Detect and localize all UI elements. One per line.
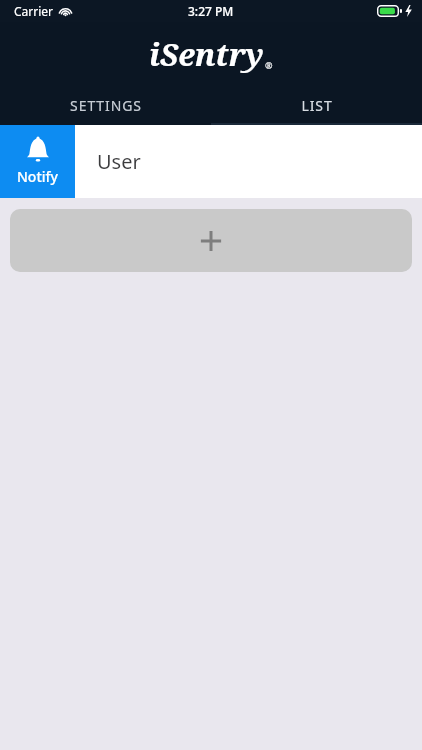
staticText: SETTINGS	[70, 96, 142, 115]
button[interactable]: Notify	[0, 125, 75, 198]
staticText: 3:27 PM	[188, 3, 234, 19]
staticText: ®	[265, 59, 273, 71]
button[interactable]: SETTINGS	[0, 85, 211, 125]
button[interactable]: User	[75, 125, 422, 198]
button[interactable]: LIST	[211, 85, 422, 125]
staticText: Notify	[17, 167, 58, 186]
staticText: iSentry	[149, 33, 264, 75]
staticText: Carrier	[14, 3, 54, 19]
staticText: User	[97, 148, 141, 175]
staticText: LIST	[301, 96, 333, 115]
button[interactable]: Add	[10, 209, 412, 272]
